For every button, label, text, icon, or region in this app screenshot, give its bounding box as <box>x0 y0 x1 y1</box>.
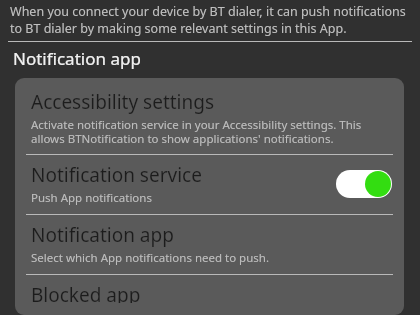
staticText: When you connect your device by BT diale… <box>10 3 412 36</box>
staticText: Push App notifications <box>31 190 152 206</box>
staticText: Blocked app <box>31 282 141 303</box>
button[interactable]: Notification app <box>15 214 404 274</box>
staticText: Select which App notifications need to p… <box>31 250 270 266</box>
button[interactable]: Notification service toggle <box>336 170 392 198</box>
staticText: Activate notification service in your Ac… <box>31 117 392 146</box>
button[interactable]: Accessibility settings <box>15 82 404 154</box>
staticText: Notification service <box>31 162 202 188</box>
staticText: Notification app <box>13 47 141 70</box>
staticText: Accessibility settings <box>31 89 215 115</box>
button[interactable]: Notification service <box>15 154 404 214</box>
staticText: Notification app <box>31 222 174 248</box>
button[interactable]: Blocked app <box>15 274 404 311</box>
